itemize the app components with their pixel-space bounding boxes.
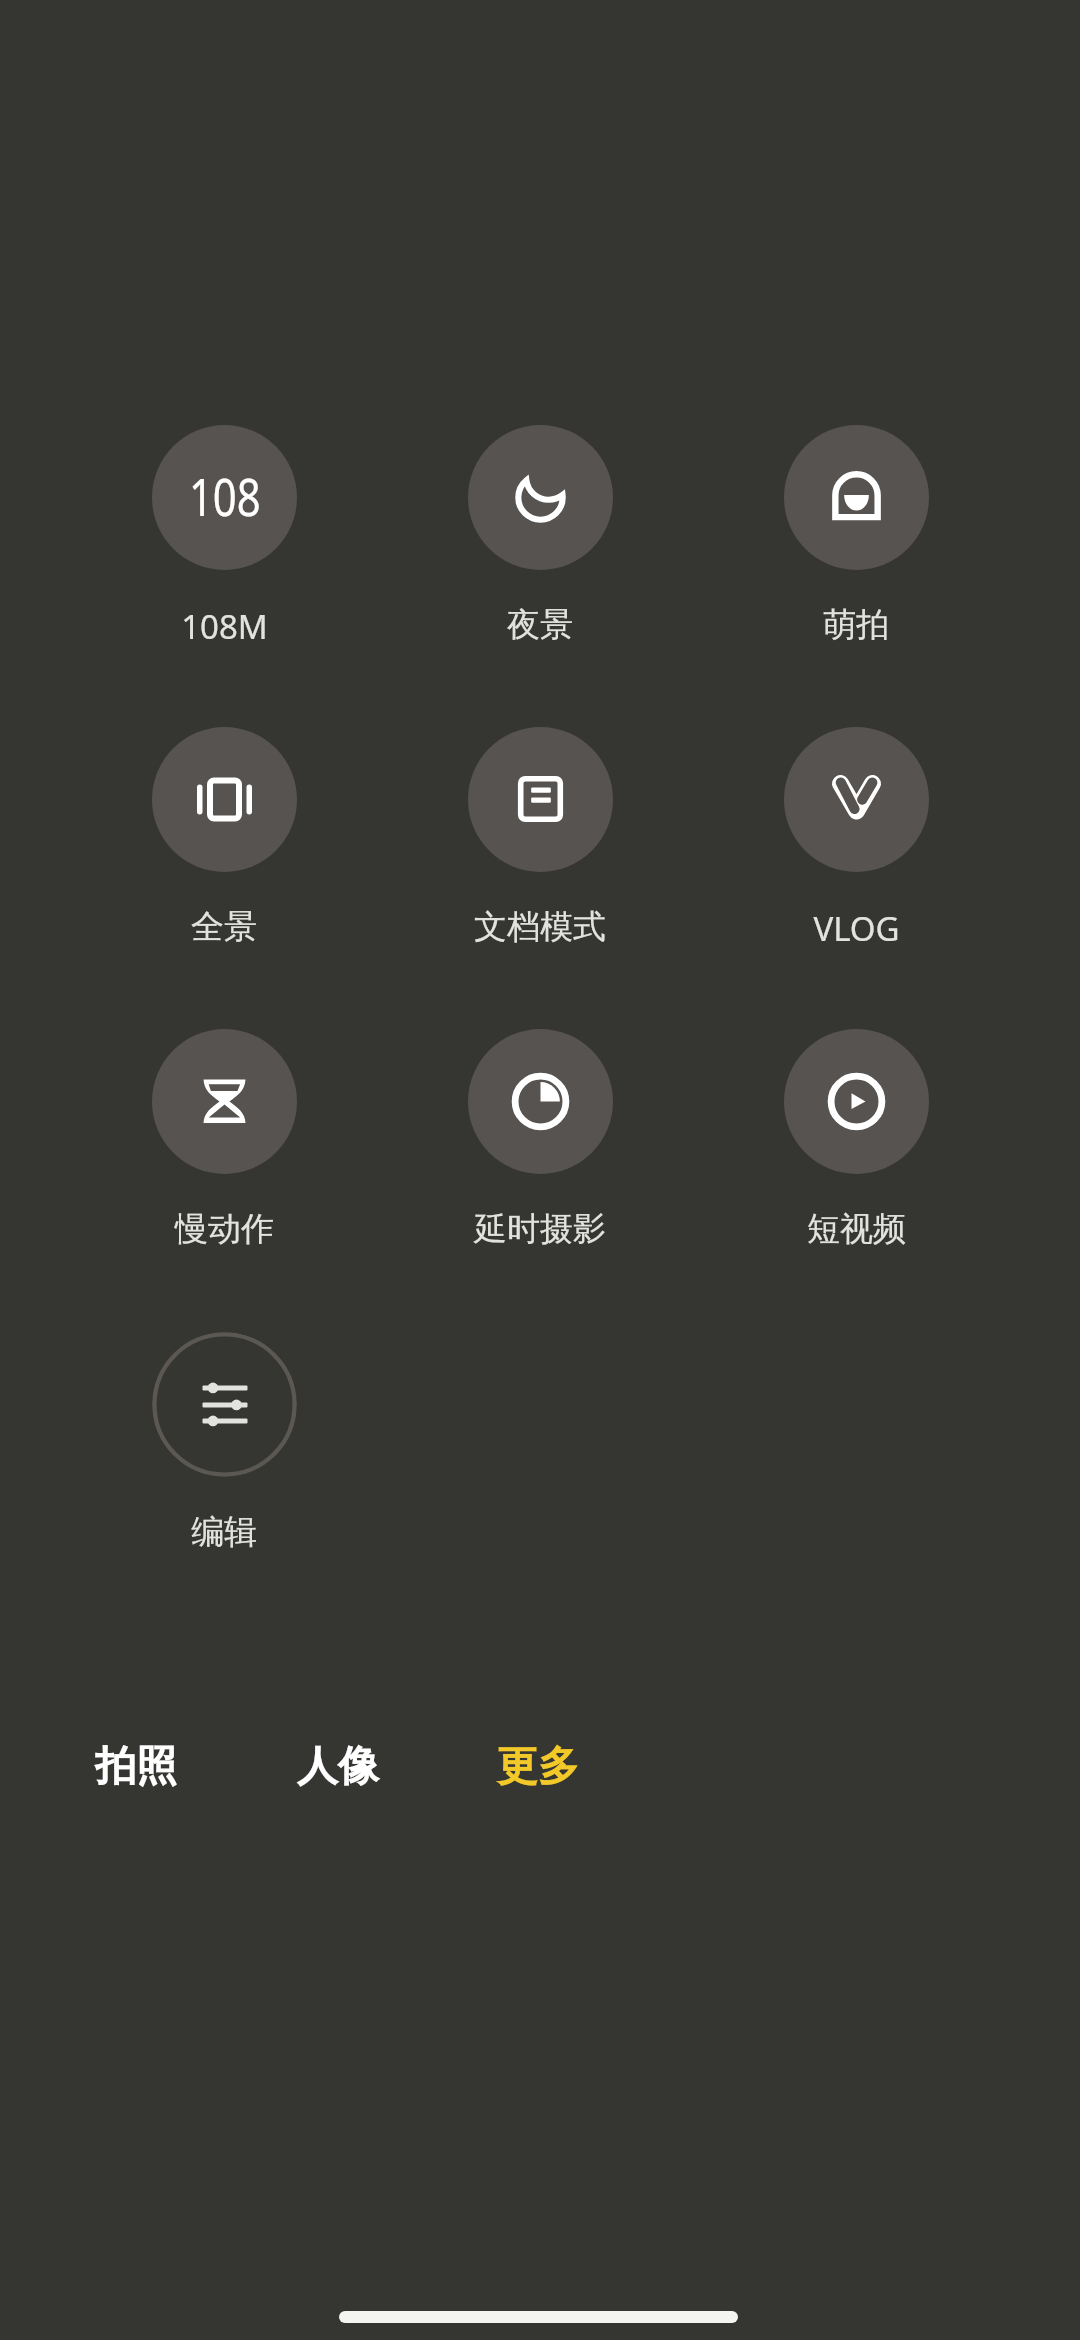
staticText: 萌拍: [823, 604, 889, 646]
button[interactable]: Slow motion mode: [109, 1029, 339, 1250]
button[interactable]: 拍照: [66, 1731, 206, 1803]
staticText: 全景: [191, 906, 257, 948]
staticText: 延时摄影: [474, 1208, 606, 1250]
staticText: 108: [189, 461, 261, 530]
button[interactable]: Cute shot mode: [741, 425, 971, 646]
button[interactable]: Short video mode: [741, 1029, 971, 1250]
staticText: 文档模式: [474, 906, 606, 948]
button[interactable]: Panorama mode: [109, 727, 339, 948]
button[interactable]: Time lapse mode: [425, 1029, 655, 1250]
button[interactable]: Night mode: [425, 425, 655, 646]
staticText: 短视频: [807, 1208, 906, 1250]
button[interactable]: 人像: [268, 1731, 408, 1803]
staticText: 更多: [497, 1741, 579, 1793]
button[interactable]: Document mode: [425, 727, 655, 948]
staticText: 编辑: [191, 1511, 257, 1553]
staticText: VLOG: [813, 906, 900, 951]
button[interactable]: 108M mode: [109, 425, 339, 649]
staticText: 夜景: [507, 604, 573, 646]
button[interactable]: Edit modes: [109, 1332, 339, 1553]
staticText: 108M: [181, 604, 268, 649]
staticText: 拍照: [95, 1741, 177, 1793]
staticText: 人像: [297, 1741, 379, 1793]
button[interactable]: 更多: [468, 1731, 608, 1803]
staticText: 慢动作: [175, 1208, 274, 1250]
button[interactable]: VLOG mode: [741, 727, 971, 951]
